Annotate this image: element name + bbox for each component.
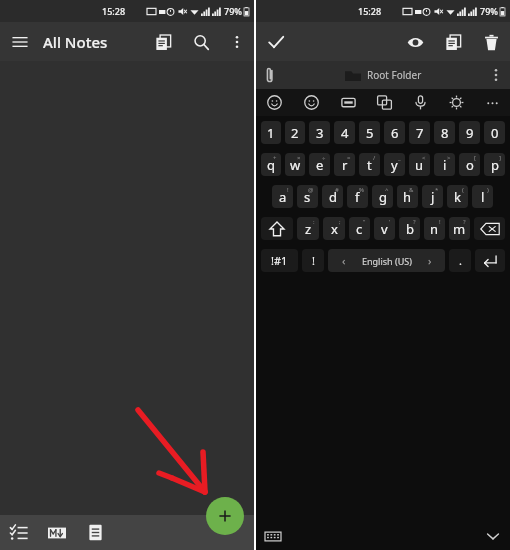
staticText: z [305,220,312,238]
button[interactable]: More options [220,25,254,59]
button[interactable]: b [399,217,420,240]
button[interactable]: New markdown note [38,515,76,550]
button[interactable]: Voice input [402,89,438,116]
staticText: * [435,186,439,194]
button[interactable]: l [472,185,493,208]
button[interactable]: d [322,185,343,208]
button[interactable]: g [372,185,393,208]
button[interactable]: n [424,217,445,240]
staticText: v [381,220,388,238]
button[interactable]: f [347,185,368,208]
button[interactable]: q [261,153,281,176]
staticText: _ [398,154,401,162]
staticText: Root Folder [367,68,422,82]
staticText: ! [287,186,289,194]
staticText: k [454,188,461,206]
button[interactable]: j [422,185,443,208]
button[interactable]: New checklist [0,515,38,550]
button[interactable]: c [349,217,370,240]
button[interactable]: 8 [434,121,455,144]
button[interactable]: Open navigation menu [0,22,40,61]
button[interactable]: 2 [285,121,305,144]
button[interactable]: 5 [359,121,380,144]
staticText: p [491,156,499,174]
button[interactable]: Emoji [256,89,293,116]
button[interactable]: 0 [484,121,505,144]
button[interactable]: s [297,185,318,208]
button[interactable]: Hide keyboard [476,522,510,550]
button[interactable]: w [285,153,305,176]
button[interactable] [475,249,505,272]
staticText: ] [499,154,501,162]
staticText: 0 [491,124,499,142]
button[interactable]: e [309,153,330,176]
button[interactable]: More [474,89,510,116]
button[interactable]: Notebooks [144,23,182,61]
staticText: < [422,154,426,162]
staticText: = [347,154,351,162]
staticText: " [363,218,366,226]
button[interactable]: Keyboard settings [438,89,474,116]
staticText: / [373,154,376,162]
staticText: All Notes [43,32,108,52]
staticText: 9 [466,124,474,142]
button[interactable]: . [449,249,471,272]
button[interactable]: r [334,153,355,176]
staticText: 1 [267,124,275,142]
button[interactable]: k [447,185,468,208]
button[interactable]: GIF [330,89,366,116]
button[interactable]: 4 [334,121,355,144]
button[interactable]: y [384,153,405,176]
button[interactable]: p [484,153,505,176]
button[interactable]: Notebooks [434,23,472,61]
staticText: w [290,156,301,174]
button[interactable]: Stickers [293,89,330,116]
button[interactable]: 3 [309,121,330,144]
staticText: : [313,218,315,226]
staticText: d [329,188,337,206]
staticText: % [359,186,364,194]
button[interactable]: x [323,217,345,240]
button[interactable]: 1 [261,121,281,144]
staticText: o [466,156,474,174]
button[interactable] [474,217,505,240]
staticText: 7 [416,124,424,142]
staticText: 2 [291,124,299,142]
staticText: ' [389,218,391,226]
button[interactable]: Save note [256,22,296,61]
staticText: × [297,154,301,162]
button[interactable]: h [397,185,418,208]
button[interactable]: New note [206,497,244,535]
button[interactable]: i [434,153,455,176]
staticText: › [428,253,432,268]
button[interactable]: 6 [384,121,405,144]
button[interactable]: !#1 [261,249,298,272]
staticText: m [453,220,466,238]
staticText: English (US) [362,255,412,267]
button[interactable]: u [409,153,430,176]
button[interactable]: ! [302,249,324,272]
staticText: j [431,188,435,206]
button[interactable]: Translate [366,89,402,116]
button[interactable]: o [459,153,480,176]
button[interactable]: 7 [409,121,430,144]
staticText: h [403,188,412,206]
button[interactable] [261,217,293,240]
button[interactable]: ‹ [328,249,445,272]
button[interactable]: 9 [459,121,480,144]
button[interactable]: t [359,153,380,176]
button[interactable]: New rich text note [76,515,114,550]
button[interactable]: z [297,217,319,240]
button[interactable]: Root Folder [284,61,482,89]
staticText: ! [312,253,315,268]
button[interactable]: a [272,185,293,208]
button[interactable]: m [449,217,470,240]
staticText: 79% [480,5,498,17]
button[interactable]: v [374,217,395,240]
button[interactable]: Search [182,23,220,61]
button[interactable]: More options [482,61,510,89]
button[interactable]: Attach file [256,61,284,89]
button[interactable]: Preview [396,23,434,61]
button[interactable]: Delete note [472,23,510,61]
button[interactable]: Switch keyboard [256,522,290,550]
